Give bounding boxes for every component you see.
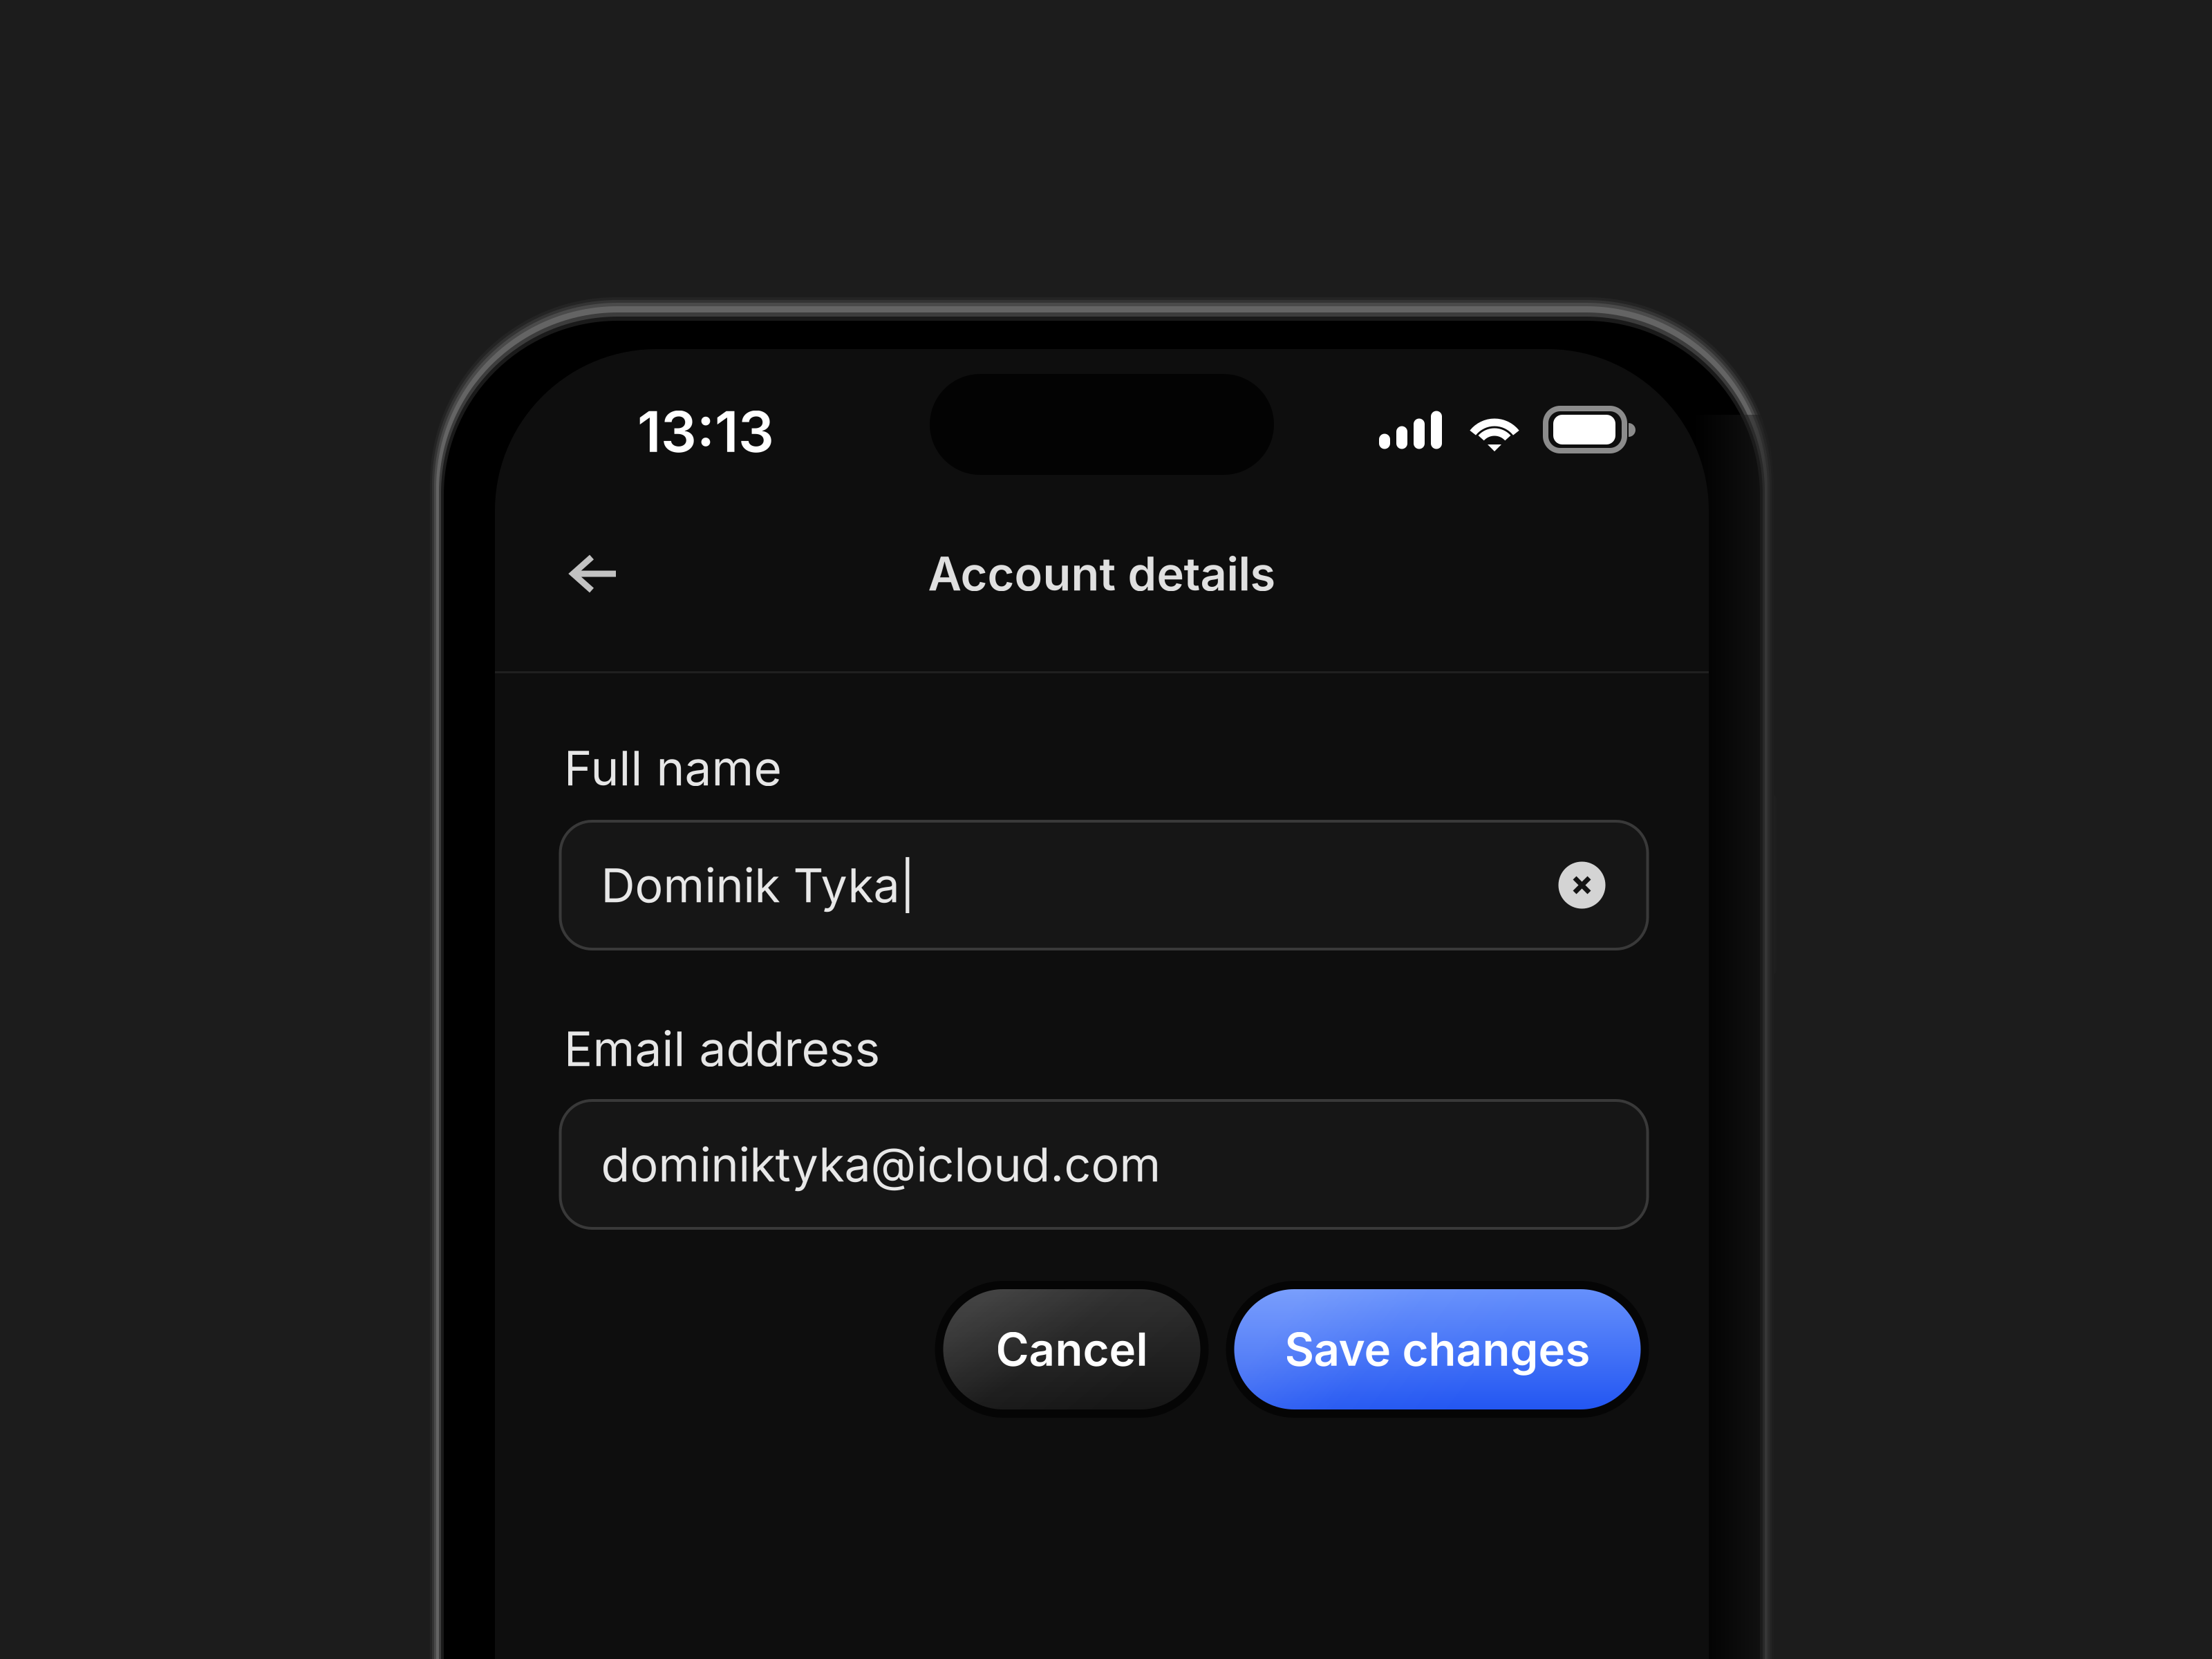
staticText: Account details: [928, 546, 1276, 602]
staticText: Save changes: [1285, 1322, 1590, 1377]
button[interactable]: Cancel: [935, 1281, 1209, 1418]
button[interactable]: Back: [550, 553, 639, 594]
staticText: 13:13: [637, 397, 774, 465]
staticText: dominiktyka@icloud.com: [601, 1136, 1161, 1193]
staticText: Email address: [564, 1020, 880, 1078]
staticText: Dominik Tyka|: [601, 857, 916, 914]
staticText: Cancel: [996, 1322, 1148, 1377]
button[interactable]: Clear text: [1558, 862, 1605, 909]
staticText: Full name: [564, 739, 781, 797]
button[interactable]: Save changes: [1226, 1281, 1649, 1418]
